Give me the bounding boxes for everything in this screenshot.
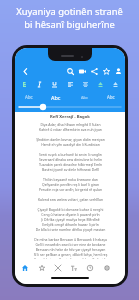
staticText: Abc	[107, 94, 115, 100]
staticText: Abc	[51, 94, 61, 101]
button[interactable]: Align center	[80, 79, 91, 90]
button[interactable]: Align left	[65, 79, 76, 90]
button[interactable]: Italic	[34, 79, 45, 90]
button[interactable]: Bold	[19, 79, 30, 90]
button[interactable]: Text size slider	[15, 101, 125, 113]
button[interactable]: Back	[19, 65, 31, 77]
button[interactable]: Favorite	[100, 65, 112, 77]
button[interactable]: Text colour	[95, 79, 106, 90]
button[interactable]: Account	[112, 65, 124, 77]
button[interactable]: Home	[18, 261, 32, 275]
staticText: Refî Xerrajî - Bagok	[50, 114, 90, 120]
button[interactable]: Text size Abc	[75, 91, 93, 103]
staticText: Diya Adar, dîsa hîlwan mîngêd lî Sulan K…	[25, 122, 116, 259]
button[interactable]: Settings	[100, 261, 114, 275]
button[interactable]: Favorites	[35, 261, 49, 275]
staticText: bi hêsanî biguherîne	[24, 18, 115, 31]
button[interactable]: Underline	[49, 79, 60, 90]
staticText: Xuyaniya gotinên stranê	[16, 5, 123, 18]
button[interactable]: Shuffle	[51, 261, 65, 275]
staticText: Abc	[25, 94, 33, 100]
button[interactable]: History	[83, 261, 97, 275]
button[interactable]: Search	[64, 65, 76, 77]
staticText: Abc	[81, 95, 88, 100]
button[interactable]: Text size Abc	[102, 91, 120, 103]
button[interactable]: Translate	[67, 261, 81, 275]
button[interactable]: Text size Abc	[20, 91, 38, 103]
button[interactable]: Share	[88, 65, 100, 77]
button[interactable]: Video	[76, 65, 88, 77]
button[interactable]: Text size Abc	[47, 91, 65, 103]
button[interactable]: Highlight	[110, 79, 121, 90]
